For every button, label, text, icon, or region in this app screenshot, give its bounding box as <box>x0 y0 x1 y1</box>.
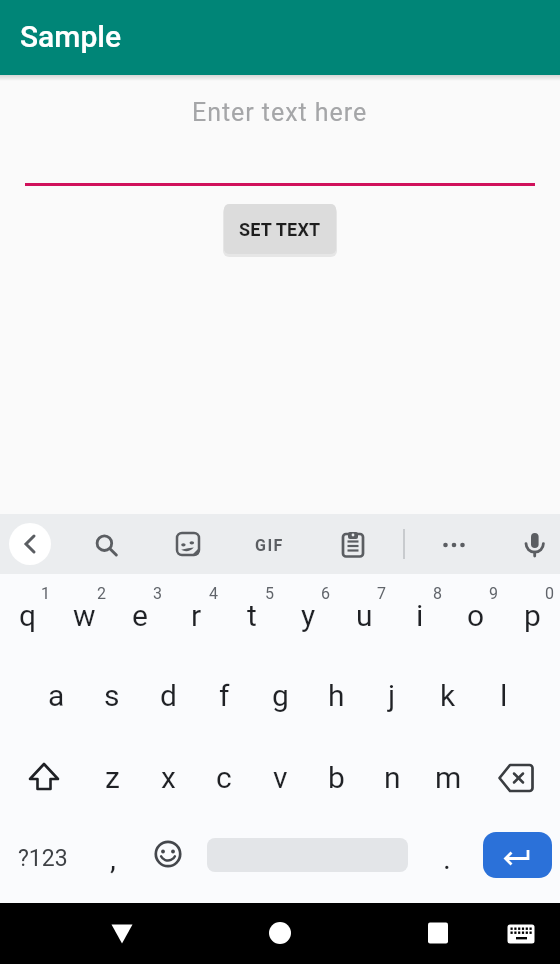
button[interactable] <box>448 574 504 656</box>
button[interactable] <box>392 574 448 656</box>
button[interactable] <box>84 656 140 738</box>
staticText: p <box>524 598 541 633</box>
button[interactable] <box>364 738 420 820</box>
button[interactable] <box>224 574 280 656</box>
staticText: ?123 <box>18 845 68 872</box>
button[interactable] <box>112 574 168 656</box>
button[interactable] <box>483 832 552 878</box>
staticText: , <box>110 841 116 876</box>
staticText: o <box>467 598 485 633</box>
button[interactable] <box>504 574 560 656</box>
button[interactable] <box>56 574 112 656</box>
staticText: w <box>73 598 96 633</box>
button[interactable] <box>434 524 474 564</box>
staticText: 1 <box>41 584 50 603</box>
staticText: 6 <box>321 584 330 603</box>
staticText: b <box>328 760 345 795</box>
staticText: SET TEXT <box>239 219 321 240</box>
button[interactable]: SET TEXT <box>224 204 336 254</box>
button[interactable] <box>308 738 364 820</box>
staticText: s <box>104 678 120 713</box>
button[interactable] <box>252 656 308 738</box>
button[interactable] <box>501 914 541 954</box>
button[interactable] <box>256 909 304 957</box>
button[interactable] <box>84 738 140 820</box>
staticText: r <box>191 598 202 633</box>
staticText: a <box>48 678 65 713</box>
button[interactable] <box>252 738 308 820</box>
button[interactable] <box>9 523 51 565</box>
button[interactable]: . <box>427 836 467 880</box>
button[interactable] <box>86 524 126 564</box>
button[interactable] <box>168 574 224 656</box>
staticText: Enter text here <box>192 98 368 127</box>
button[interactable] <box>0 738 84 820</box>
staticText: d <box>160 678 177 713</box>
staticText: c <box>216 760 232 795</box>
button[interactable] <box>476 738 560 820</box>
staticText: l <box>500 678 508 713</box>
button[interactable]: Enter text here <box>130 92 430 132</box>
button[interactable] <box>28 656 84 738</box>
staticText: e <box>132 598 148 633</box>
button[interactable] <box>98 909 146 957</box>
button[interactable] <box>414 909 462 957</box>
button[interactable] <box>476 656 532 738</box>
button[interactable] <box>513 524 553 564</box>
staticText: 7 <box>377 584 386 603</box>
button[interactable] <box>336 574 392 656</box>
staticText: q <box>19 598 37 633</box>
staticText: g <box>272 678 289 713</box>
staticText: f <box>219 678 230 713</box>
button[interactable] <box>332 524 372 564</box>
staticText: y <box>301 598 316 633</box>
button[interactable] <box>308 656 364 738</box>
staticText: 9 <box>489 584 498 603</box>
button[interactable] <box>168 524 208 564</box>
staticText: u <box>356 598 373 633</box>
staticText: 5 <box>265 584 274 603</box>
staticText: x <box>161 760 176 795</box>
button[interactable] <box>420 656 476 738</box>
button[interactable] <box>196 738 252 820</box>
button[interactable] <box>140 656 196 738</box>
staticText: n <box>384 760 401 795</box>
staticText: j <box>388 678 396 713</box>
staticText: v <box>273 760 288 795</box>
staticText: i <box>416 598 424 633</box>
staticText: GIF <box>255 536 284 555</box>
staticText: . <box>443 841 451 876</box>
staticText: 4 <box>209 584 218 603</box>
staticText: 2 <box>97 584 106 603</box>
staticText: k <box>440 678 456 713</box>
button[interactable] <box>196 656 252 738</box>
button[interactable] <box>280 574 336 656</box>
staticText: t <box>247 598 257 633</box>
button[interactable] <box>0 574 56 656</box>
button[interactable] <box>146 832 190 876</box>
button[interactable] <box>140 738 196 820</box>
button[interactable] <box>420 738 476 820</box>
staticText: h <box>328 678 345 713</box>
staticText: z <box>105 760 120 795</box>
button[interactable]: , <box>93 836 133 880</box>
button[interactable]: ?123 <box>3 839 83 877</box>
staticText: 3 <box>153 584 162 603</box>
staticText: m <box>435 760 462 795</box>
staticText: 8 <box>433 584 442 603</box>
staticText: 0 <box>545 584 554 603</box>
button[interactable] <box>364 656 420 738</box>
button[interactable]: GIF <box>239 530 299 560</box>
staticText: Sample <box>20 19 122 54</box>
